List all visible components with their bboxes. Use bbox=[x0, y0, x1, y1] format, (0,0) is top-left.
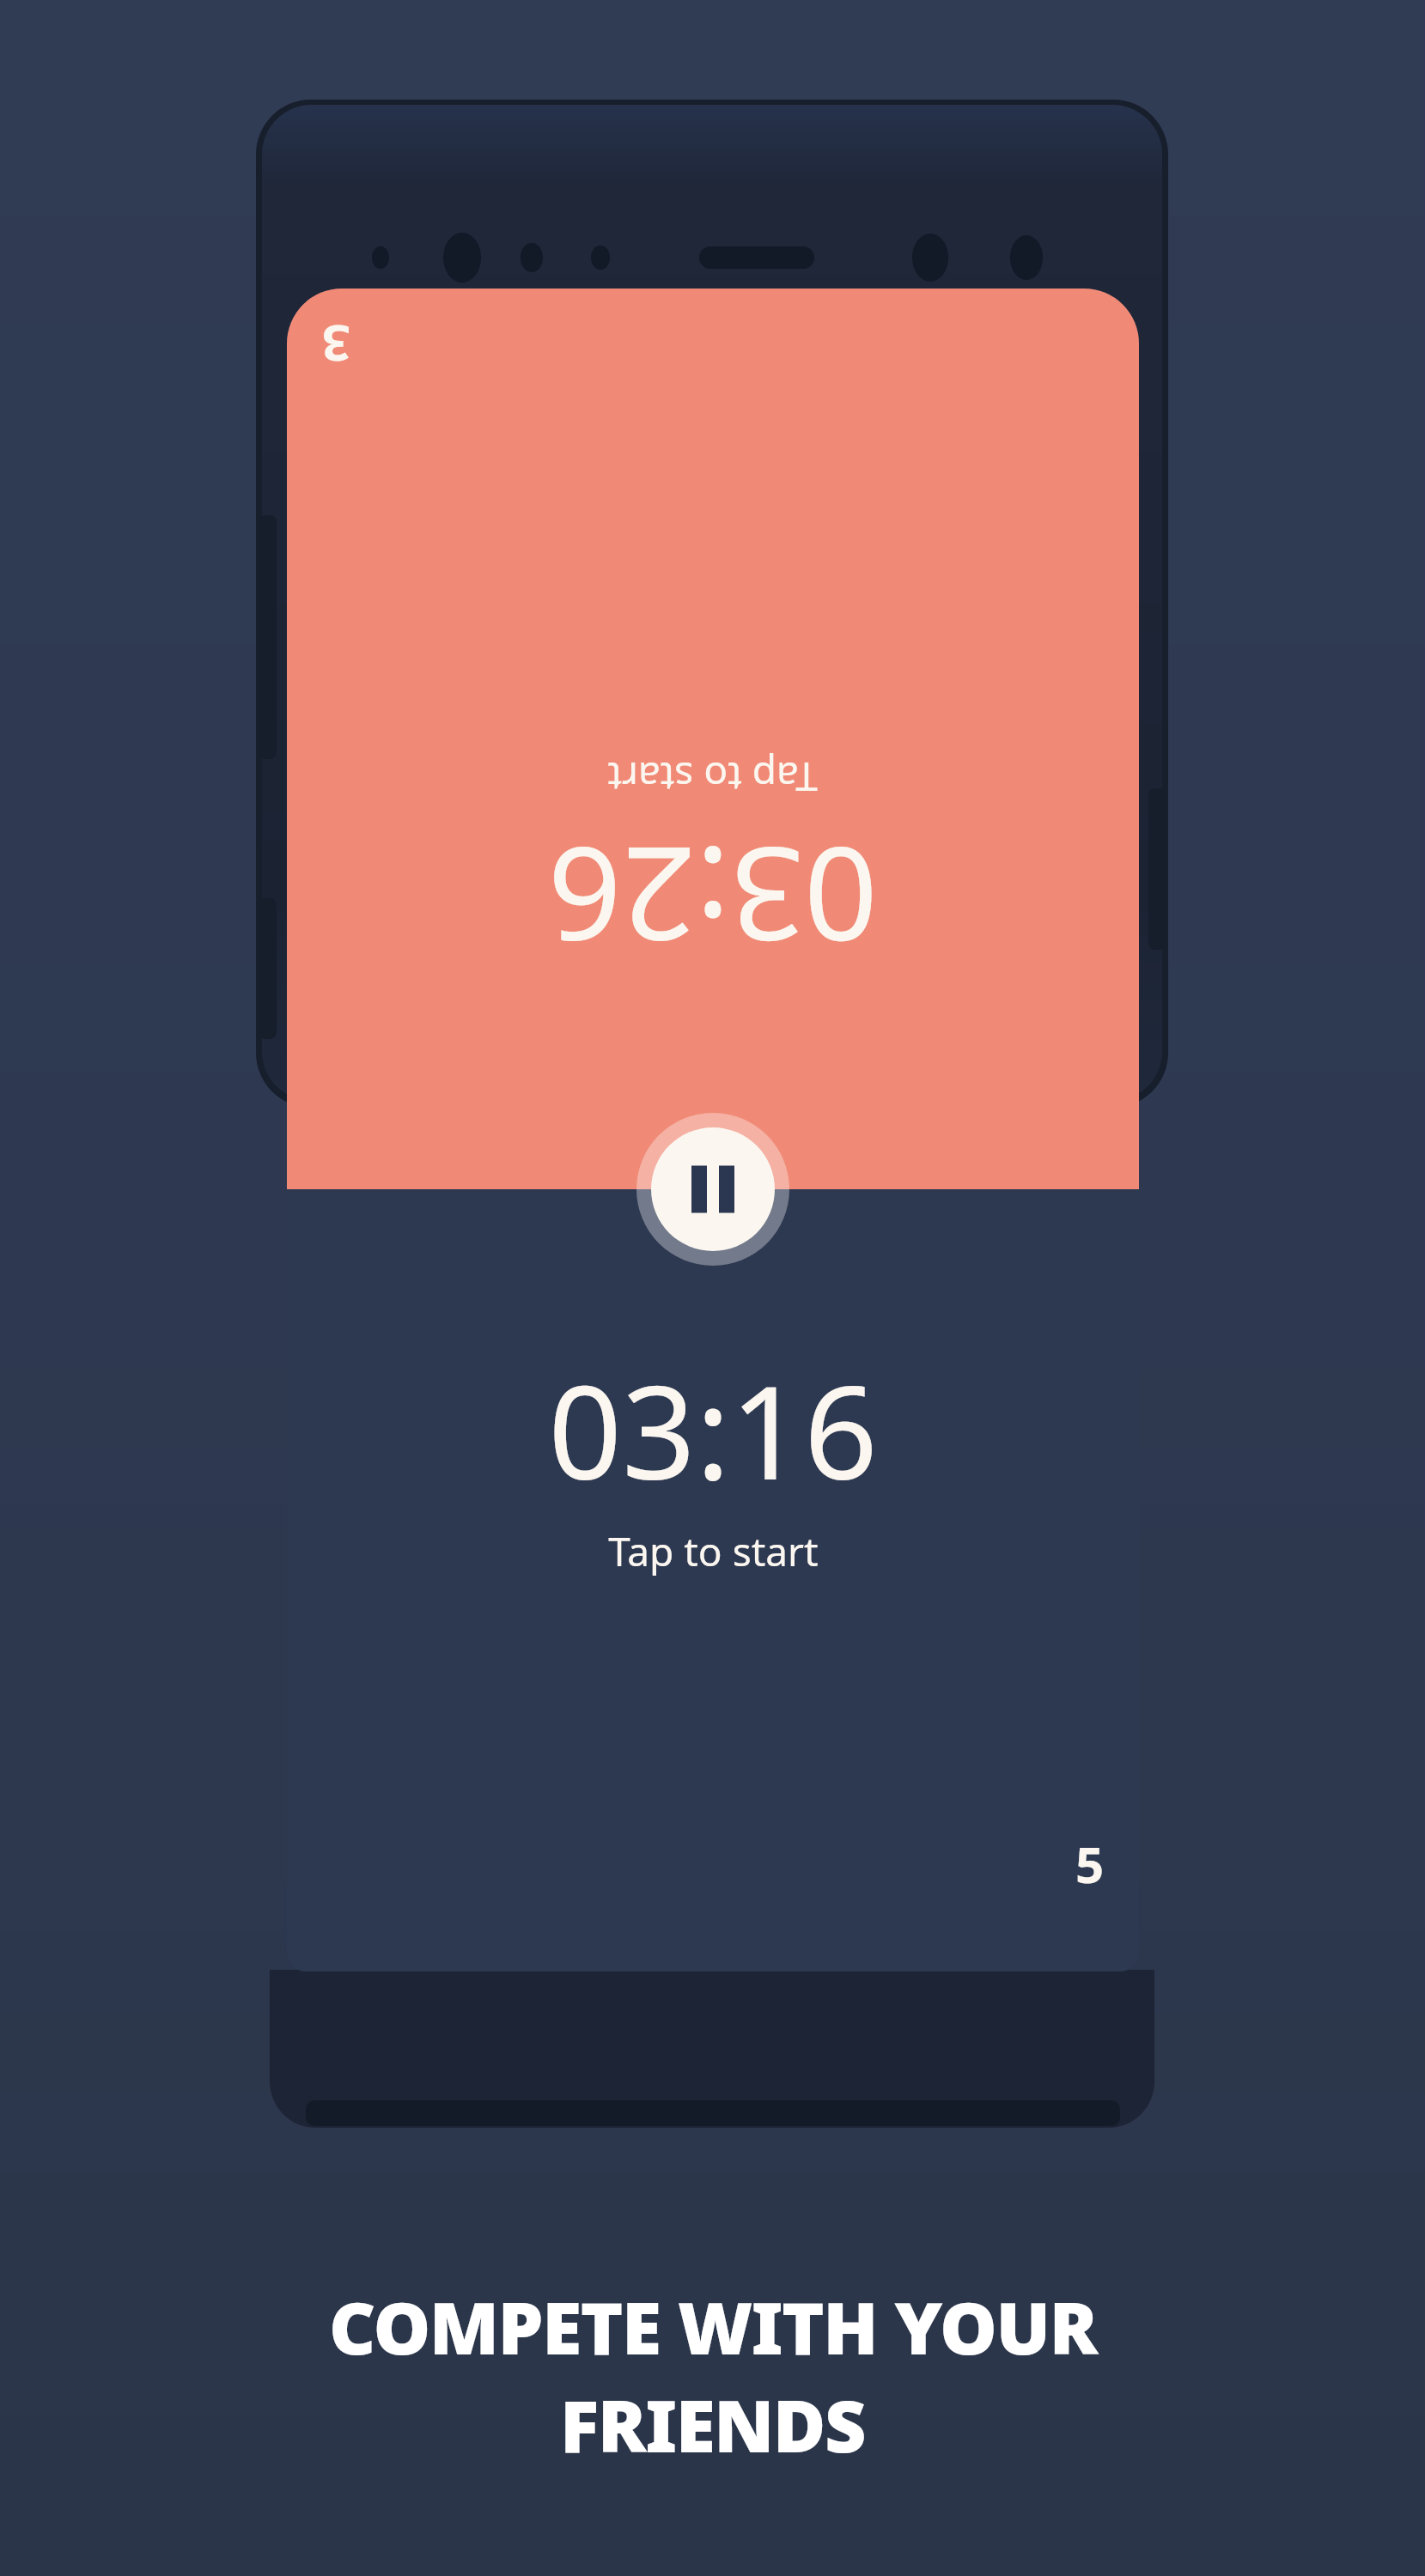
button[interactable]: 3 bbox=[287, 289, 1139, 1189]
staticText: Tap to start bbox=[607, 750, 818, 805]
staticText: 3 bbox=[321, 311, 350, 379]
staticText: FRIENDS bbox=[560, 2375, 865, 2473]
staticText: 03:16 bbox=[548, 1342, 878, 1517]
button[interactable]: Pause timer bbox=[636, 1113, 789, 1266]
staticText: Tap to start bbox=[608, 1524, 819, 1578]
staticText: COMPETE WITH YOUR bbox=[329, 2277, 1097, 2375]
staticText: 5 bbox=[1075, 1830, 1105, 1898]
staticText: 03:26 bbox=[548, 810, 878, 985]
button[interactable]: 03:16 bbox=[287, 1189, 1139, 1971]
